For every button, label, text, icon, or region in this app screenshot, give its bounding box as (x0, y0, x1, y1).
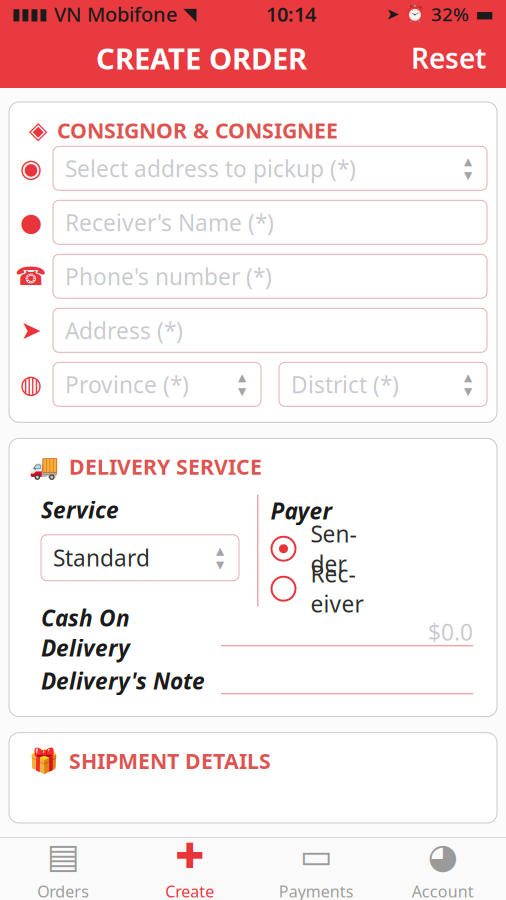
staticText: ▲ (216, 545, 224, 557)
staticText: ▭ (300, 836, 333, 875)
staticText: Province (*) (65, 369, 189, 399)
button[interactable]: ▭ (253, 838, 379, 900)
staticText: ▼ (464, 169, 472, 181)
staticText: ▲ (464, 155, 472, 167)
staticText: VN Mobifone (54, 1, 177, 27)
staticText: $0.0 (428, 617, 473, 647)
staticText: ▼ (238, 385, 246, 397)
staticText: 10:14 (266, 1, 316, 27)
staticText: Account (412, 880, 474, 900)
staticText: 🚚 (29, 453, 59, 480)
staticText: Sender (310, 519, 356, 579)
button[interactable]: ◕ (379, 838, 506, 900)
button[interactable]: Select address to pickup (*) (53, 146, 487, 190)
staticText: ☎ (15, 262, 47, 291)
staticText: ◈ (29, 116, 47, 144)
staticText: ⏰ (405, 5, 425, 23)
staticText: ➤ (20, 316, 41, 345)
button[interactable]: Standard (41, 535, 239, 581)
staticText: ◉ (20, 154, 42, 183)
staticText: Orders (37, 880, 89, 900)
staticText: Service (41, 495, 119, 525)
staticText: Create (165, 880, 214, 900)
staticText: Payments (279, 880, 354, 900)
staticText: Address (*) (65, 315, 183, 345)
staticText: ▲ (464, 371, 472, 383)
staticText: CREATE ORDER (96, 38, 307, 77)
staticText: SHIPMENT DETAILS (69, 747, 271, 775)
staticText: ▬ (475, 3, 494, 25)
staticText: ◍ (20, 370, 42, 399)
button[interactable]: Phone's number (*) (53, 254, 487, 298)
staticText (467, 665, 473, 695)
staticText: ▤ (47, 836, 80, 875)
button[interactable]: Address (*) (53, 308, 487, 352)
staticText: District (*) (291, 369, 399, 399)
staticText: Select address to pickup (*) (65, 153, 356, 183)
button[interactable]: Reset (397, 31, 500, 85)
staticText: ▮▮▮▮ (12, 5, 48, 23)
button[interactable]: Sender (270, 532, 378, 566)
staticText: ◕ (428, 836, 458, 875)
staticText: ● (20, 208, 42, 237)
staticText: Delivery's Note (41, 666, 205, 696)
staticText: ◥ (183, 4, 196, 24)
staticText: CONSIGNOR & CONSIGNEE (57, 116, 338, 144)
staticText: Receiver (310, 559, 363, 619)
staticText: Receiver's Name (*) (65, 207, 274, 237)
staticText: 32% (431, 2, 469, 26)
button[interactable]: ✚ (126, 838, 253, 900)
staticText: ▼ (216, 559, 224, 571)
staticText: ▲ (238, 371, 246, 383)
staticText: Reset (411, 39, 486, 77)
staticText: Payer (270, 496, 332, 526)
staticText: ➤ (386, 5, 399, 23)
button[interactable]: Receiver's Name (*) (53, 200, 487, 244)
button[interactable]: District (*) (279, 362, 487, 406)
staticText: ▼ (464, 385, 472, 397)
staticText: DELIVERY SERVICE (69, 452, 262, 481)
staticText: Standard (53, 543, 150, 573)
button[interactable]: ▤ (0, 838, 126, 900)
button[interactable]: Province (*) (53, 362, 261, 406)
staticText: 🎁 (29, 747, 59, 774)
staticText: ✚ (175, 836, 204, 875)
staticText: Phone's number (*) (65, 261, 272, 291)
button[interactable]: Receiver (270, 572, 378, 606)
staticText: Cash On Delivery (41, 603, 130, 663)
